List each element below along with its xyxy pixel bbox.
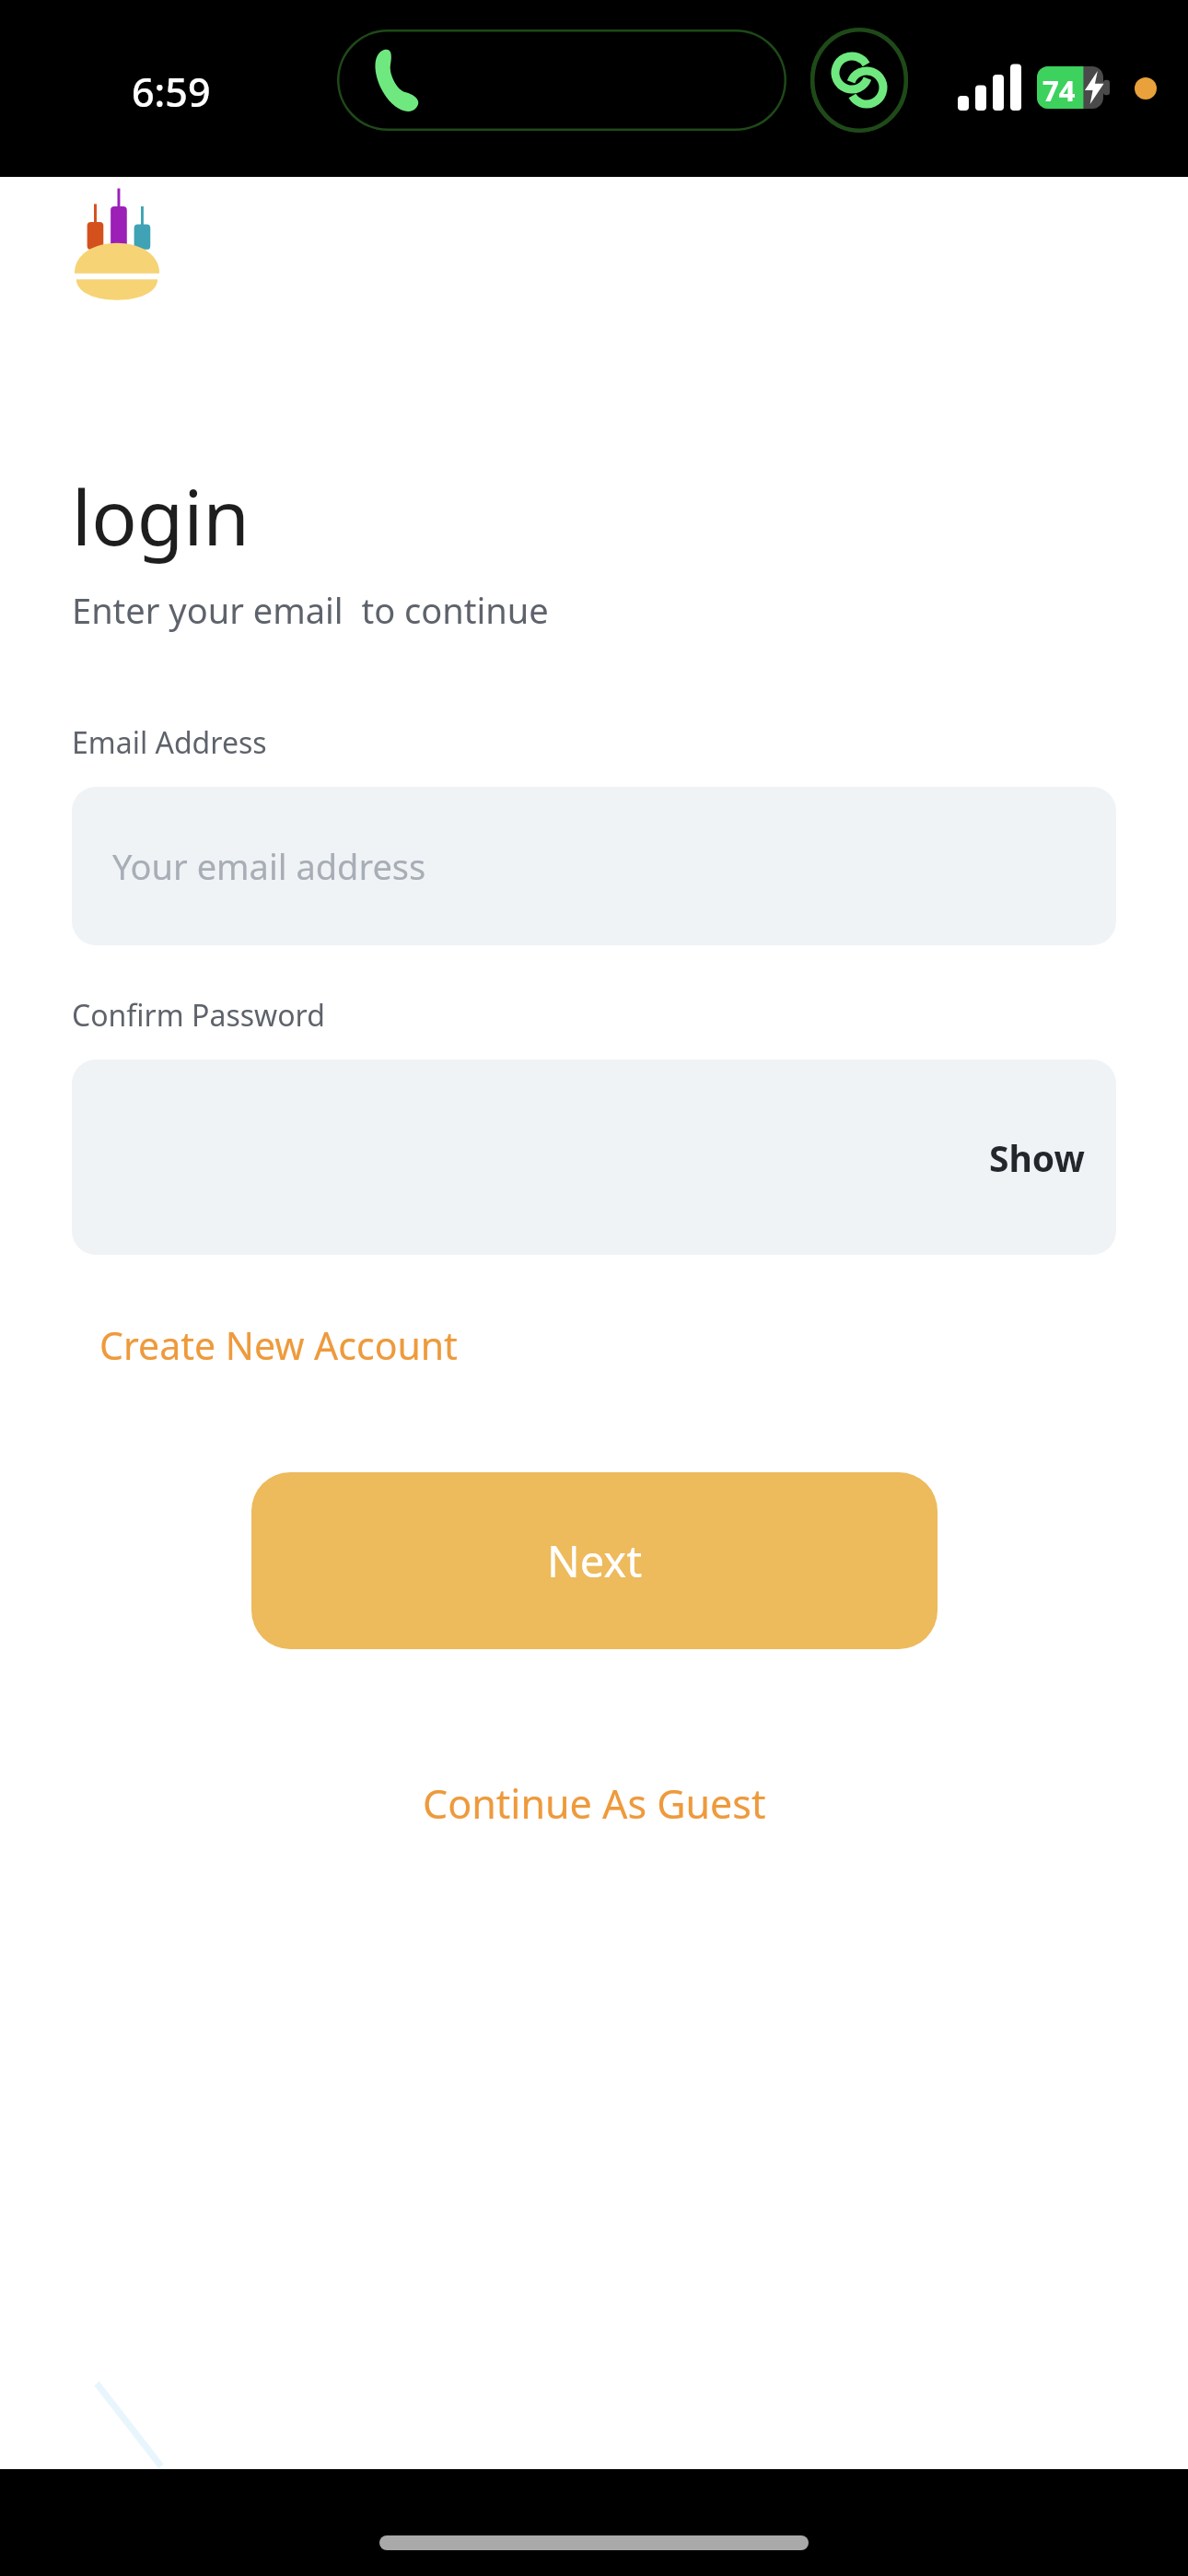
staticText: Confirm Password [72,995,325,1036]
staticText: Enter your email to continue [72,586,549,634]
button[interactable]: Your email address [72,787,1116,945]
staticText: Your email address [112,842,426,890]
button[interactable]: Call recording [810,28,908,133]
staticText: login [72,464,250,568]
staticText: Continue As Guest [423,1776,766,1831]
staticText: 6:59 [132,64,211,119]
staticText: Show [989,1133,1085,1182]
button[interactable]: Create New Account [99,1319,458,1371]
staticText: Next [547,1531,643,1590]
button[interactable]: Show [72,1060,1116,1255]
button[interactable]: Next [251,1472,938,1649]
button[interactable]: Ongoing call [337,29,786,131]
staticText: 74 [1042,71,1076,110]
staticText: Email Address [72,722,267,763]
button[interactable]: Continue As Guest [423,1776,766,1831]
staticText: Create New Account [99,1319,458,1371]
button[interactable]: Show [958,1118,1116,1197]
